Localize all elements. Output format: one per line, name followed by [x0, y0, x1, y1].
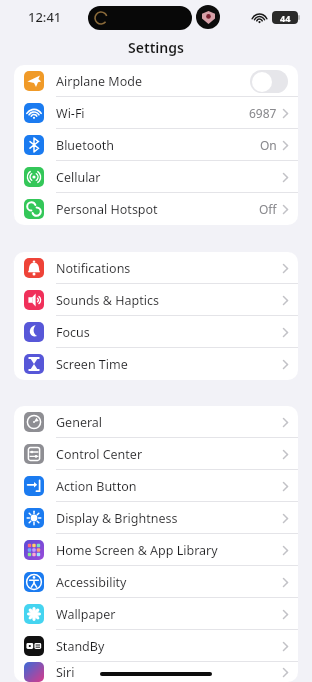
- button[interactable]: Home Screen and App Library: [14, 534, 298, 566]
- staticText: General: [56, 414, 103, 431]
- staticText: 12:41: [28, 8, 62, 26]
- other: Wallpaper: [24, 604, 44, 624]
- button[interactable]: Notifications: [14, 252, 298, 284]
- other: Home Screen and App Library: [24, 540, 44, 560]
- button[interactable]: Wi-Fi: [14, 97, 298, 129]
- staticText: Personal Hotspot: [56, 201, 158, 218]
- other: Wi-Fi: [24, 103, 44, 123]
- staticText: Sounds & Haptics: [56, 292, 159, 309]
- staticText: Action Button: [56, 478, 137, 495]
- button[interactable]: Wallpaper: [14, 598, 298, 630]
- button[interactable]: Action Button: [14, 470, 298, 502]
- button[interactable]: Airplane Mode toggle, off: [250, 70, 288, 93]
- button[interactable]: Focus: [14, 316, 298, 348]
- other: Screen Time: [24, 354, 44, 374]
- other: Focus: [24, 322, 44, 342]
- staticText: Display & Brightness: [56, 510, 178, 527]
- button[interactable]: Cellular: [14, 161, 298, 193]
- button[interactable]: Siri: [14, 662, 298, 682]
- staticText: Off: [259, 201, 277, 217]
- button[interactable]: General: [14, 406, 298, 438]
- button[interactable]: Screen Time: [14, 348, 298, 380]
- staticText: 6987: [249, 105, 277, 121]
- button[interactable]: Bluetooth: [14, 129, 298, 161]
- staticText: Home Screen & App Library: [56, 542, 218, 559]
- other: Sounds and Haptics: [24, 290, 44, 310]
- staticText: Screen Time: [56, 356, 128, 373]
- staticText: 44: [280, 12, 291, 24]
- staticText: Bluetooth: [56, 137, 115, 154]
- staticText: Wallpaper: [56, 606, 116, 623]
- staticText: Control Center: [56, 446, 143, 463]
- other: Action Button: [24, 476, 44, 496]
- other: Personal Hotspot: [24, 199, 44, 219]
- staticText: Airplane Mode: [56, 73, 142, 90]
- staticText: StandBy: [56, 638, 105, 655]
- staticText: Accessibility: [56, 574, 127, 591]
- button[interactable]: Display and Brightness: [14, 502, 298, 534]
- other: General: [24, 412, 44, 432]
- button[interactable]: Airplane Mode: [14, 65, 298, 97]
- button[interactable]: Personal Hotspot: [14, 193, 298, 225]
- other: Cellular: [24, 167, 44, 187]
- other: StandBy: [24, 636, 44, 656]
- staticText: Notifications: [56, 260, 131, 277]
- other: Siri: [24, 662, 44, 682]
- button[interactable]: Control Center: [14, 438, 298, 470]
- other: Accessibility: [24, 572, 44, 592]
- other: Control Center: [24, 444, 44, 464]
- staticText: Focus: [56, 324, 90, 341]
- staticText: Siri: [56, 664, 75, 681]
- button[interactable]: Sounds and Haptics: [14, 284, 298, 316]
- staticText: On: [260, 137, 277, 153]
- other: Airplane Mode: [24, 71, 44, 91]
- other: Bluetooth: [24, 135, 44, 155]
- staticText: Settings: [128, 38, 184, 57]
- staticText: Cellular: [56, 169, 101, 186]
- other: Notifications: [24, 258, 44, 278]
- button[interactable]: Accessibility: [14, 566, 298, 598]
- other: Display and Brightness: [24, 508, 44, 528]
- staticText: Wi-Fi: [56, 105, 85, 122]
- button[interactable]: StandBy: [14, 630, 298, 662]
